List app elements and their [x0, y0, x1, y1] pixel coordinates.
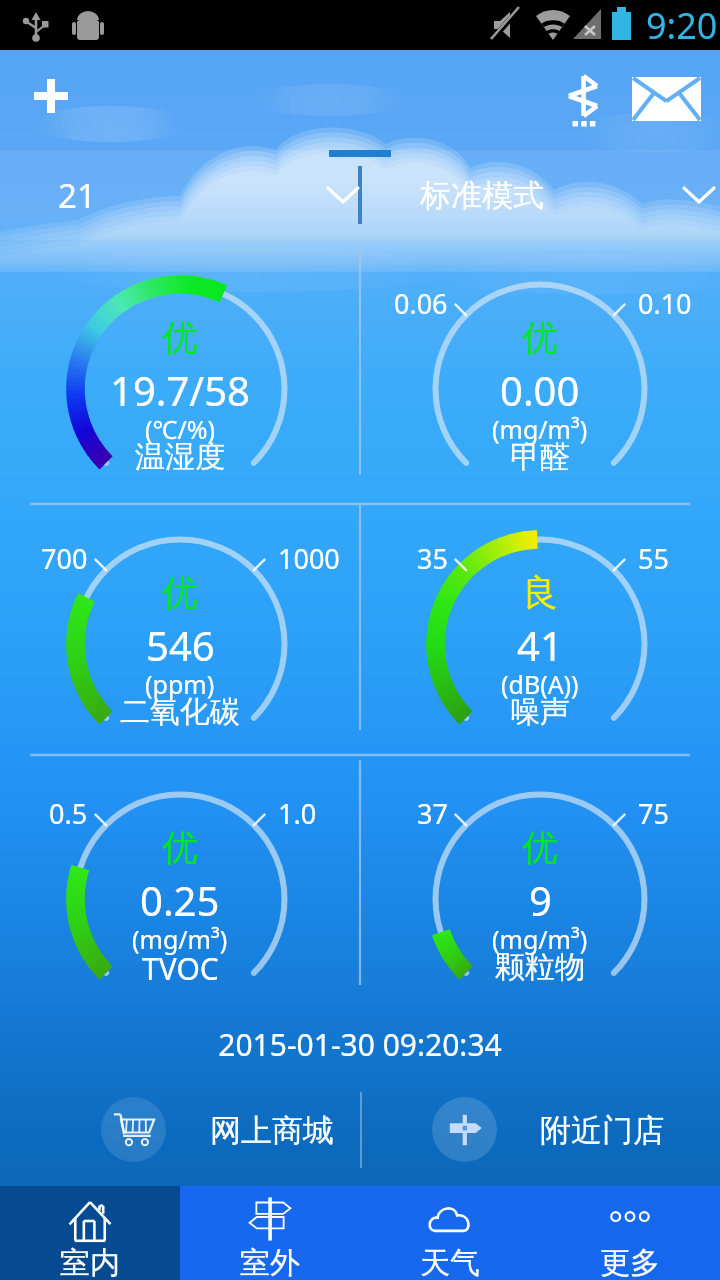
- staticText: 9:20: [646, 1, 718, 50]
- staticText: 19.7/58: [110, 363, 250, 417]
- staticText: (dB(A)): [501, 667, 579, 701]
- staticText: 2015-01-30 09:20:34: [0, 1024, 720, 1065]
- staticText: 颗粒物: [495, 948, 585, 986]
- staticText: 546: [146, 618, 215, 672]
- staticText: 优: [522, 315, 558, 360]
- button[interactable]: 网上商城: [0, 1089, 358, 1171]
- staticText: 55: [638, 540, 669, 574]
- staticText: TVOC: [142, 948, 219, 989]
- staticText: 0.5: [49, 795, 88, 829]
- staticText: 9: [529, 873, 552, 927]
- staticText: 优: [162, 825, 198, 870]
- staticText: 良: [522, 570, 558, 615]
- button[interactable]: 0.06: [360, 245, 720, 500]
- staticText: 网上商城: [210, 1111, 334, 1150]
- button[interactable]: 35: [360, 500, 720, 755]
- staticText: (mg/m³): [492, 922, 588, 956]
- button[interactable]: 21: [0, 150, 720, 240]
- staticText: 37: [417, 795, 448, 829]
- button[interactable]: Add device: [19, 64, 83, 128]
- staticText: 室外: [240, 1244, 300, 1280]
- staticText: 甲醛: [510, 438, 570, 476]
- staticText: 35: [417, 540, 448, 574]
- staticText: 优: [522, 825, 558, 870]
- staticText: (ppm): [145, 667, 215, 701]
- staticText: 700: [41, 540, 88, 574]
- button[interactable]: 室外: [180, 1186, 360, 1280]
- staticText: (mg/m³): [492, 412, 588, 446]
- button[interactable]: 更多: [540, 1186, 720, 1280]
- button[interactable]: 0.5: [0, 755, 360, 1010]
- button[interactable]: 700: [0, 500, 360, 755]
- staticText: (mg/m³): [132, 922, 228, 956]
- staticText: 1000: [278, 540, 340, 574]
- staticText: 附近门店: [540, 1111, 664, 1150]
- staticText: 1.0: [278, 795, 317, 829]
- button[interactable]: 室内: [0, 1186, 180, 1280]
- button[interactable]: 标准模式: [362, 176, 720, 215]
- staticText: 标准模式: [420, 176, 544, 215]
- staticText: 0.25: [140, 873, 220, 927]
- staticText: 优: [162, 315, 198, 360]
- button[interactable]: Bluetooth: [559, 66, 607, 128]
- staticText: 0.06: [394, 285, 448, 319]
- staticText: 噪声: [510, 693, 570, 731]
- button[interactable]: Messages: [623, 68, 710, 130]
- staticText: 75: [638, 795, 669, 829]
- staticText: (℃/%): [145, 412, 215, 446]
- button[interactable]: 天气: [360, 1186, 540, 1280]
- staticText: 优: [162, 570, 198, 615]
- staticText: 0.10: [638, 285, 692, 319]
- button[interactable]: 附近门店: [362, 1089, 720, 1171]
- staticText: 0.00: [500, 363, 580, 417]
- staticText: 更多: [600, 1244, 660, 1280]
- staticText: 二氧化碳: [120, 693, 240, 731]
- button[interactable]: 37: [360, 755, 720, 1010]
- staticText: 41: [517, 618, 563, 672]
- button[interactable]: 优: [0, 245, 360, 500]
- staticText: 天气: [420, 1244, 480, 1280]
- staticText: 温湿度: [135, 438, 225, 476]
- staticText: 室内: [60, 1244, 120, 1280]
- staticText: 21: [58, 173, 96, 218]
